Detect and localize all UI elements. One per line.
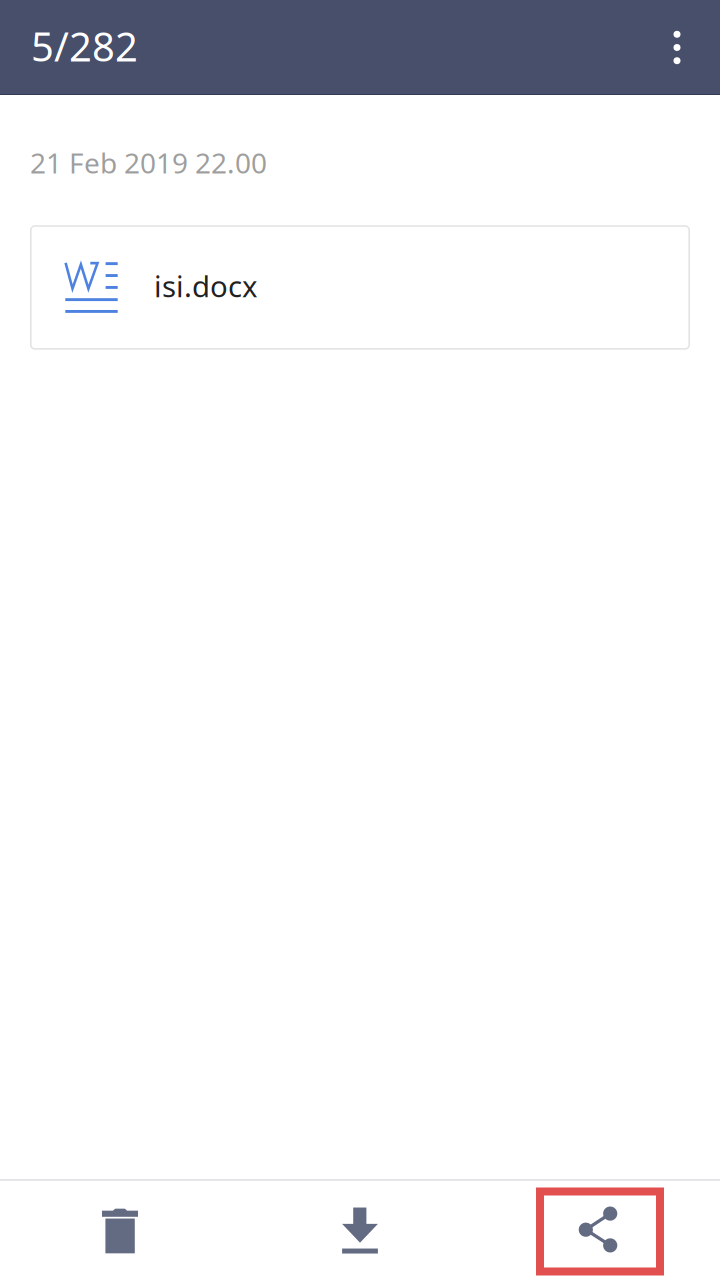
button[interactable]: Download <box>240 1179 480 1279</box>
button[interactable]: Delete <box>0 1179 240 1279</box>
staticText: 21 Feb 2019 22.00 <box>30 144 267 181</box>
staticText: 5/282 <box>31 19 138 72</box>
button[interactable]: Share <box>480 1179 720 1279</box>
button[interactable]: More options <box>647 0 707 95</box>
button[interactable]: isi.docx <box>30 225 690 350</box>
staticText: isi.docx <box>154 266 258 305</box>
